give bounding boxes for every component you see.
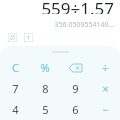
staticText: 5 [42, 102, 49, 117]
button[interactable]: Backspace [60, 57, 90, 78]
staticText: 4 [12, 102, 19, 117]
button[interactable]: Percent [30, 57, 60, 78]
staticText: 8 [42, 81, 49, 96]
button[interactable]: 9 [60, 78, 90, 99]
staticText: % [40, 60, 50, 75]
staticText: − [102, 102, 109, 117]
button[interactable]: Divide [90, 57, 120, 78]
staticText: 7 [12, 81, 19, 96]
button[interactable]: 4 [0, 99, 30, 120]
staticText: × [102, 81, 109, 96]
button[interactable]: 7 [0, 78, 30, 99]
staticText: 559÷1.57 [41, 0, 114, 14]
staticText: 9 [72, 81, 79, 96]
button[interactable]: 5 [30, 99, 60, 120]
button[interactable]: Scientific functions [24, 33, 33, 42]
button[interactable]: 6 [60, 99, 90, 120]
button[interactable]: Multiply [90, 78, 120, 99]
button[interactable]: Minus [90, 99, 120, 120]
staticText: C [12, 60, 19, 75]
staticText: 356.0509554140… [54, 20, 114, 29]
staticText: ÷ [102, 60, 109, 76]
staticText: 6 [72, 102, 79, 117]
button[interactable]: 8 [30, 78, 60, 99]
button[interactable]: Angle unit [8, 33, 17, 42]
button[interactable]: Clear [0, 57, 30, 78]
